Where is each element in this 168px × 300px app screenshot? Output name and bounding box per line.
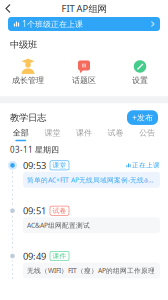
button[interactable]: 09:51 xyxy=(8,206,160,237)
staticText: 公告 xyxy=(139,128,155,138)
button[interactable]: 设置 xyxy=(112,59,168,85)
button[interactable]: 公告 xyxy=(131,128,163,141)
staticText: 09:53 xyxy=(23,159,46,172)
button[interactable]: 话题区 xyxy=(56,59,112,85)
staticText: 无线（WIFI）FIT（瘦）AP的组网工作原理 xyxy=(27,266,155,275)
staticText: 设置 xyxy=(132,75,148,85)
staticText: 课件 xyxy=(52,252,66,260)
staticText: 试卷 xyxy=(108,128,124,138)
staticText: 正在上课 xyxy=(132,161,160,169)
staticText: 1个班级正在上课 xyxy=(22,19,83,29)
staticText: 中级班 xyxy=(10,39,37,50)
staticText: 试卷 xyxy=(52,207,66,215)
staticText: FIT AP组网 xyxy=(61,2,106,15)
button[interactable]: 成长管理 xyxy=(0,59,56,85)
button[interactable]: 09:53 xyxy=(8,161,160,192)
button[interactable]: 1个班级正在上课 xyxy=(0,17,168,31)
staticText: 课堂 xyxy=(44,128,60,138)
button[interactable]: 全部 xyxy=(5,128,37,141)
button[interactable]: +发布 xyxy=(127,110,158,125)
staticText: 09:51 xyxy=(23,204,46,217)
staticText: AC&AP组网配置测试 xyxy=(27,221,90,230)
button[interactable]: 课堂 xyxy=(37,128,68,141)
button[interactable]: 09:49 xyxy=(8,251,160,283)
button[interactable]: 试卷 xyxy=(100,128,131,141)
staticText: 全部 xyxy=(13,128,29,138)
staticText: 03-11 星期四 xyxy=(10,144,59,155)
staticText: 课堂 xyxy=(52,161,66,169)
button[interactable]: 课件 xyxy=(68,128,100,141)
button[interactable]: Back xyxy=(0,0,15,16)
staticText: 成长管理 xyxy=(12,75,44,85)
staticText: 课件 xyxy=(76,128,92,138)
staticText: 09:49 xyxy=(23,250,46,262)
staticText: 教学日志 xyxy=(10,112,46,123)
staticText: +发布 xyxy=(132,112,153,123)
staticText: 话题区 xyxy=(72,75,96,85)
staticText: 简单的AC+FIT AP无线局域网案例-无线ap... xyxy=(27,175,156,184)
